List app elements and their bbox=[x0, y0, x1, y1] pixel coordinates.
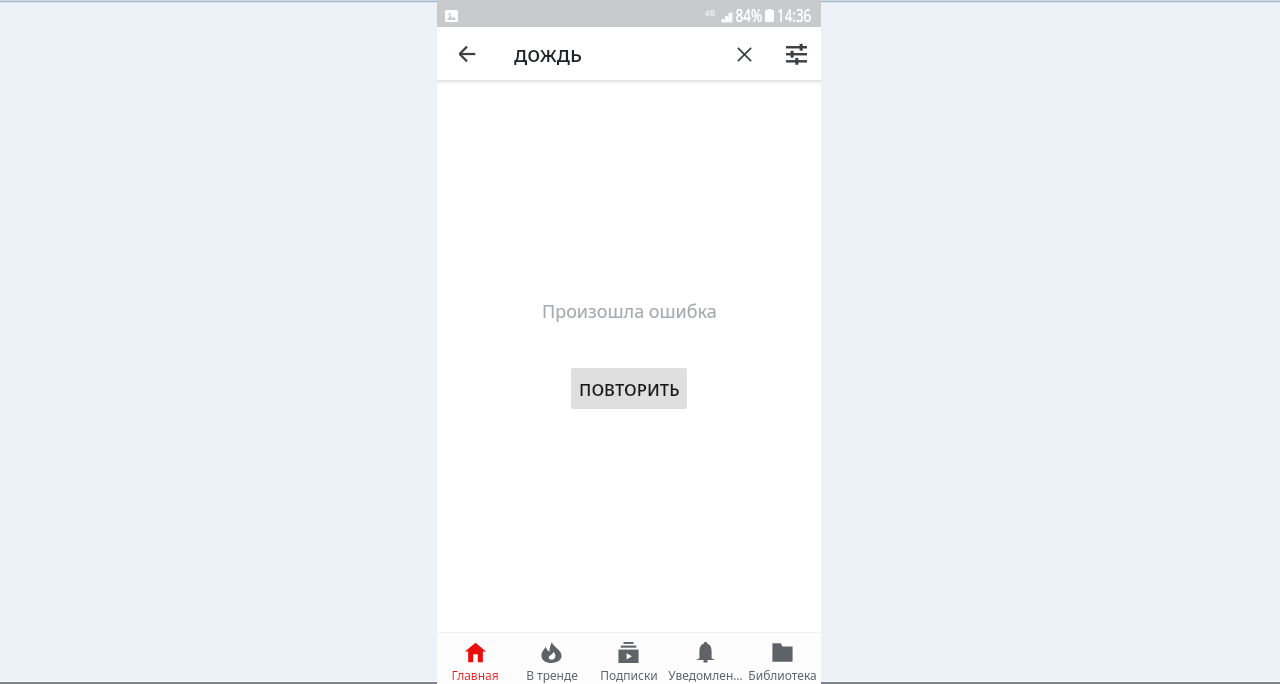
button[interactable]: Back bbox=[444, 31, 490, 77]
button[interactable]: В тренде bbox=[513, 633, 590, 684]
button[interactable]: Search filters bbox=[773, 31, 819, 77]
staticText: 84% bbox=[736, 3, 762, 28]
staticText: 4G bbox=[705, 7, 716, 18]
button[interactable]: Clear search bbox=[721, 31, 767, 77]
button[interactable]: Подписки bbox=[590, 633, 667, 684]
button[interactable]: Главная bbox=[437, 633, 513, 684]
staticText: 14:36 bbox=[777, 3, 812, 28]
staticText: ПОВТОРИТЬ bbox=[579, 378, 680, 400]
button[interactable]: Библиотека bbox=[744, 633, 821, 684]
staticText: Главная bbox=[451, 667, 499, 683]
staticText: Произошла ошибка bbox=[542, 299, 717, 324]
staticText: Уведомлен… bbox=[668, 667, 743, 683]
button[interactable]: Уведомлен… bbox=[667, 633, 744, 684]
staticText: В тренде bbox=[526, 667, 578, 683]
staticText: Библиотека bbox=[748, 667, 817, 683]
staticText: дождь bbox=[514, 39, 583, 68]
button[interactable]: ПОВТОРИТЬ bbox=[571, 368, 687, 409]
staticText: Подписки bbox=[600, 667, 658, 683]
